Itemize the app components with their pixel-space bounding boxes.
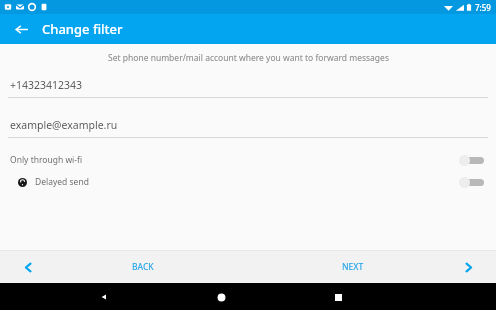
- button[interactable]: Home: [208, 284, 234, 310]
- button[interactable]: BACK: [38, 251, 248, 283]
- staticText: 7:59: [475, 2, 491, 13]
- button[interactable]: Back: [91, 284, 117, 310]
- staticText: Set phone number/mail account where you …: [108, 52, 389, 64]
- button[interactable]: Delayed send: [0, 171, 496, 193]
- staticText: +14323412343: [10, 78, 83, 92]
- staticText: BACK: [132, 261, 154, 273]
- staticText: Delayed send: [35, 176, 89, 188]
- staticText: Change filter: [42, 20, 123, 38]
- staticText: NEXT: [342, 261, 364, 273]
- staticText: Only through wi-fi: [10, 154, 83, 166]
- button[interactable]: NEXT: [248, 251, 458, 283]
- button[interactable]: Previous: [18, 257, 38, 277]
- button[interactable]: Toggle: [458, 153, 484, 167]
- button[interactable]: Next: [458, 257, 478, 277]
- staticText: example@example.ru: [10, 118, 118, 132]
- button[interactable]: Recent apps: [325, 284, 351, 310]
- button[interactable]: Toggle: [458, 175, 484, 189]
- button[interactable]: Back: [10, 18, 32, 40]
- button[interactable]: Only through wi-fi: [0, 149, 496, 171]
